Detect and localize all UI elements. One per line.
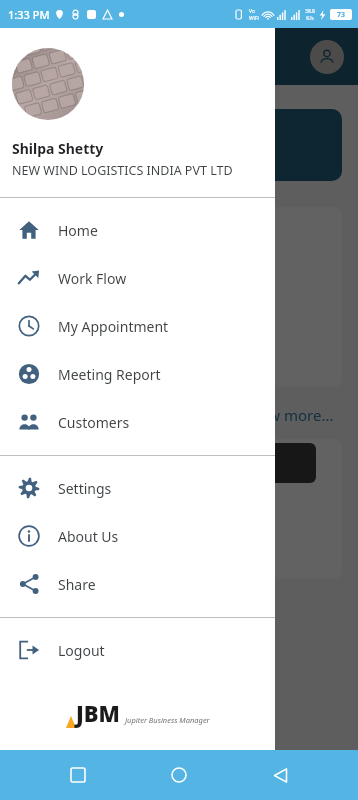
button[interactable]: Meeting Report <box>0 350 275 398</box>
button[interactable]: Show more... <box>242 405 334 425</box>
button[interactable]: My Appointment <box>0 302 275 350</box>
button[interactable]: Work Flow <box>0 254 275 302</box>
button[interactable]: Home <box>0 206 275 254</box>
button[interactable]: Logout <box>0 626 275 674</box>
staticText: NEW WIND LOGISTICS INDIA PVT LTD <box>12 162 233 179</box>
button[interactable]: NEW WIND LOGISTICS INDIA PVT LTD <box>16 109 342 181</box>
button[interactable]: Customers <box>0 398 275 446</box>
staticText: Customers <box>58 413 130 432</box>
staticText: 1:33 PM <box>8 7 50 22</box>
button[interactable]: Recent apps <box>55 752 101 798</box>
staticText: Work Flow <box>58 269 127 288</box>
staticText: My Appointment <box>58 317 169 336</box>
staticText: JBM <box>76 698 120 728</box>
staticText: 9876543200 <box>30 149 93 164</box>
staticText: Vo WiFi <box>249 8 259 21</box>
staticText: Jupiter Business Manager <box>125 715 210 725</box>
button[interactable]: Back <box>257 752 303 798</box>
staticText: Settings <box>58 479 112 498</box>
staticText: Share <box>58 575 96 594</box>
staticText: 73 <box>337 10 346 20</box>
staticText: Shilpa Shetty <box>12 139 104 158</box>
button[interactable]: Settings <box>0 464 275 512</box>
button[interactable]: Reports <box>16 439 342 579</box>
button[interactable]: Share <box>0 560 275 608</box>
staticText: Home <box>58 221 98 240</box>
button[interactable]: Home <box>156 752 202 798</box>
staticText: Appointments <box>32 355 119 373</box>
staticText: Meeting Report <box>58 365 161 384</box>
button[interactable]: Profile <box>310 40 344 74</box>
staticText: Reports <box>32 495 80 513</box>
button[interactable]: Appointments <box>16 207 342 387</box>
staticText: Logout <box>58 641 105 660</box>
staticText: About Us <box>58 527 119 546</box>
staticText: 38.8 K/s <box>305 8 315 21</box>
button[interactable]: About Us <box>0 512 275 560</box>
